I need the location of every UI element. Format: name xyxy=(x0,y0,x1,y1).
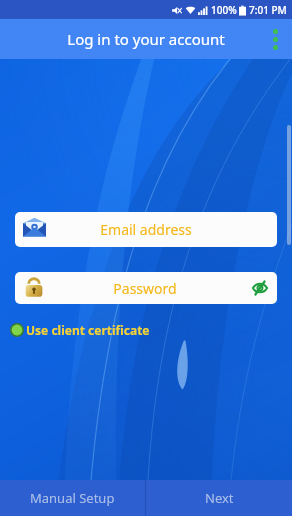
button[interactable]: Next xyxy=(146,480,292,516)
staticText: Use client certificate xyxy=(26,322,150,338)
staticText: Manual Setup xyxy=(30,489,115,507)
staticText: Email address xyxy=(100,220,192,239)
button[interactable]: Show password xyxy=(245,273,275,303)
button[interactable]: Manual Setup xyxy=(0,480,145,516)
button[interactable]: Email address xyxy=(15,212,277,247)
staticText: Next xyxy=(205,489,234,507)
staticText: Password xyxy=(113,279,177,298)
button[interactable]: More options xyxy=(258,19,292,59)
button[interactable]: Use client certificate xyxy=(10,319,150,341)
staticText: Log in to your account xyxy=(67,29,225,49)
button[interactable]: Password xyxy=(15,272,277,304)
staticText: 100% xyxy=(211,3,237,17)
staticText: 7:01 PM xyxy=(249,3,287,17)
